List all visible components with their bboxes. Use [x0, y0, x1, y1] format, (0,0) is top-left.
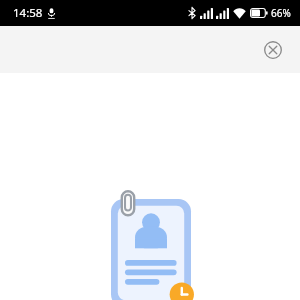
staticText: 14:58: [13, 5, 43, 21]
staticText: 66%: [271, 6, 291, 20]
button[interactable]: Close: [256, 33, 290, 67]
